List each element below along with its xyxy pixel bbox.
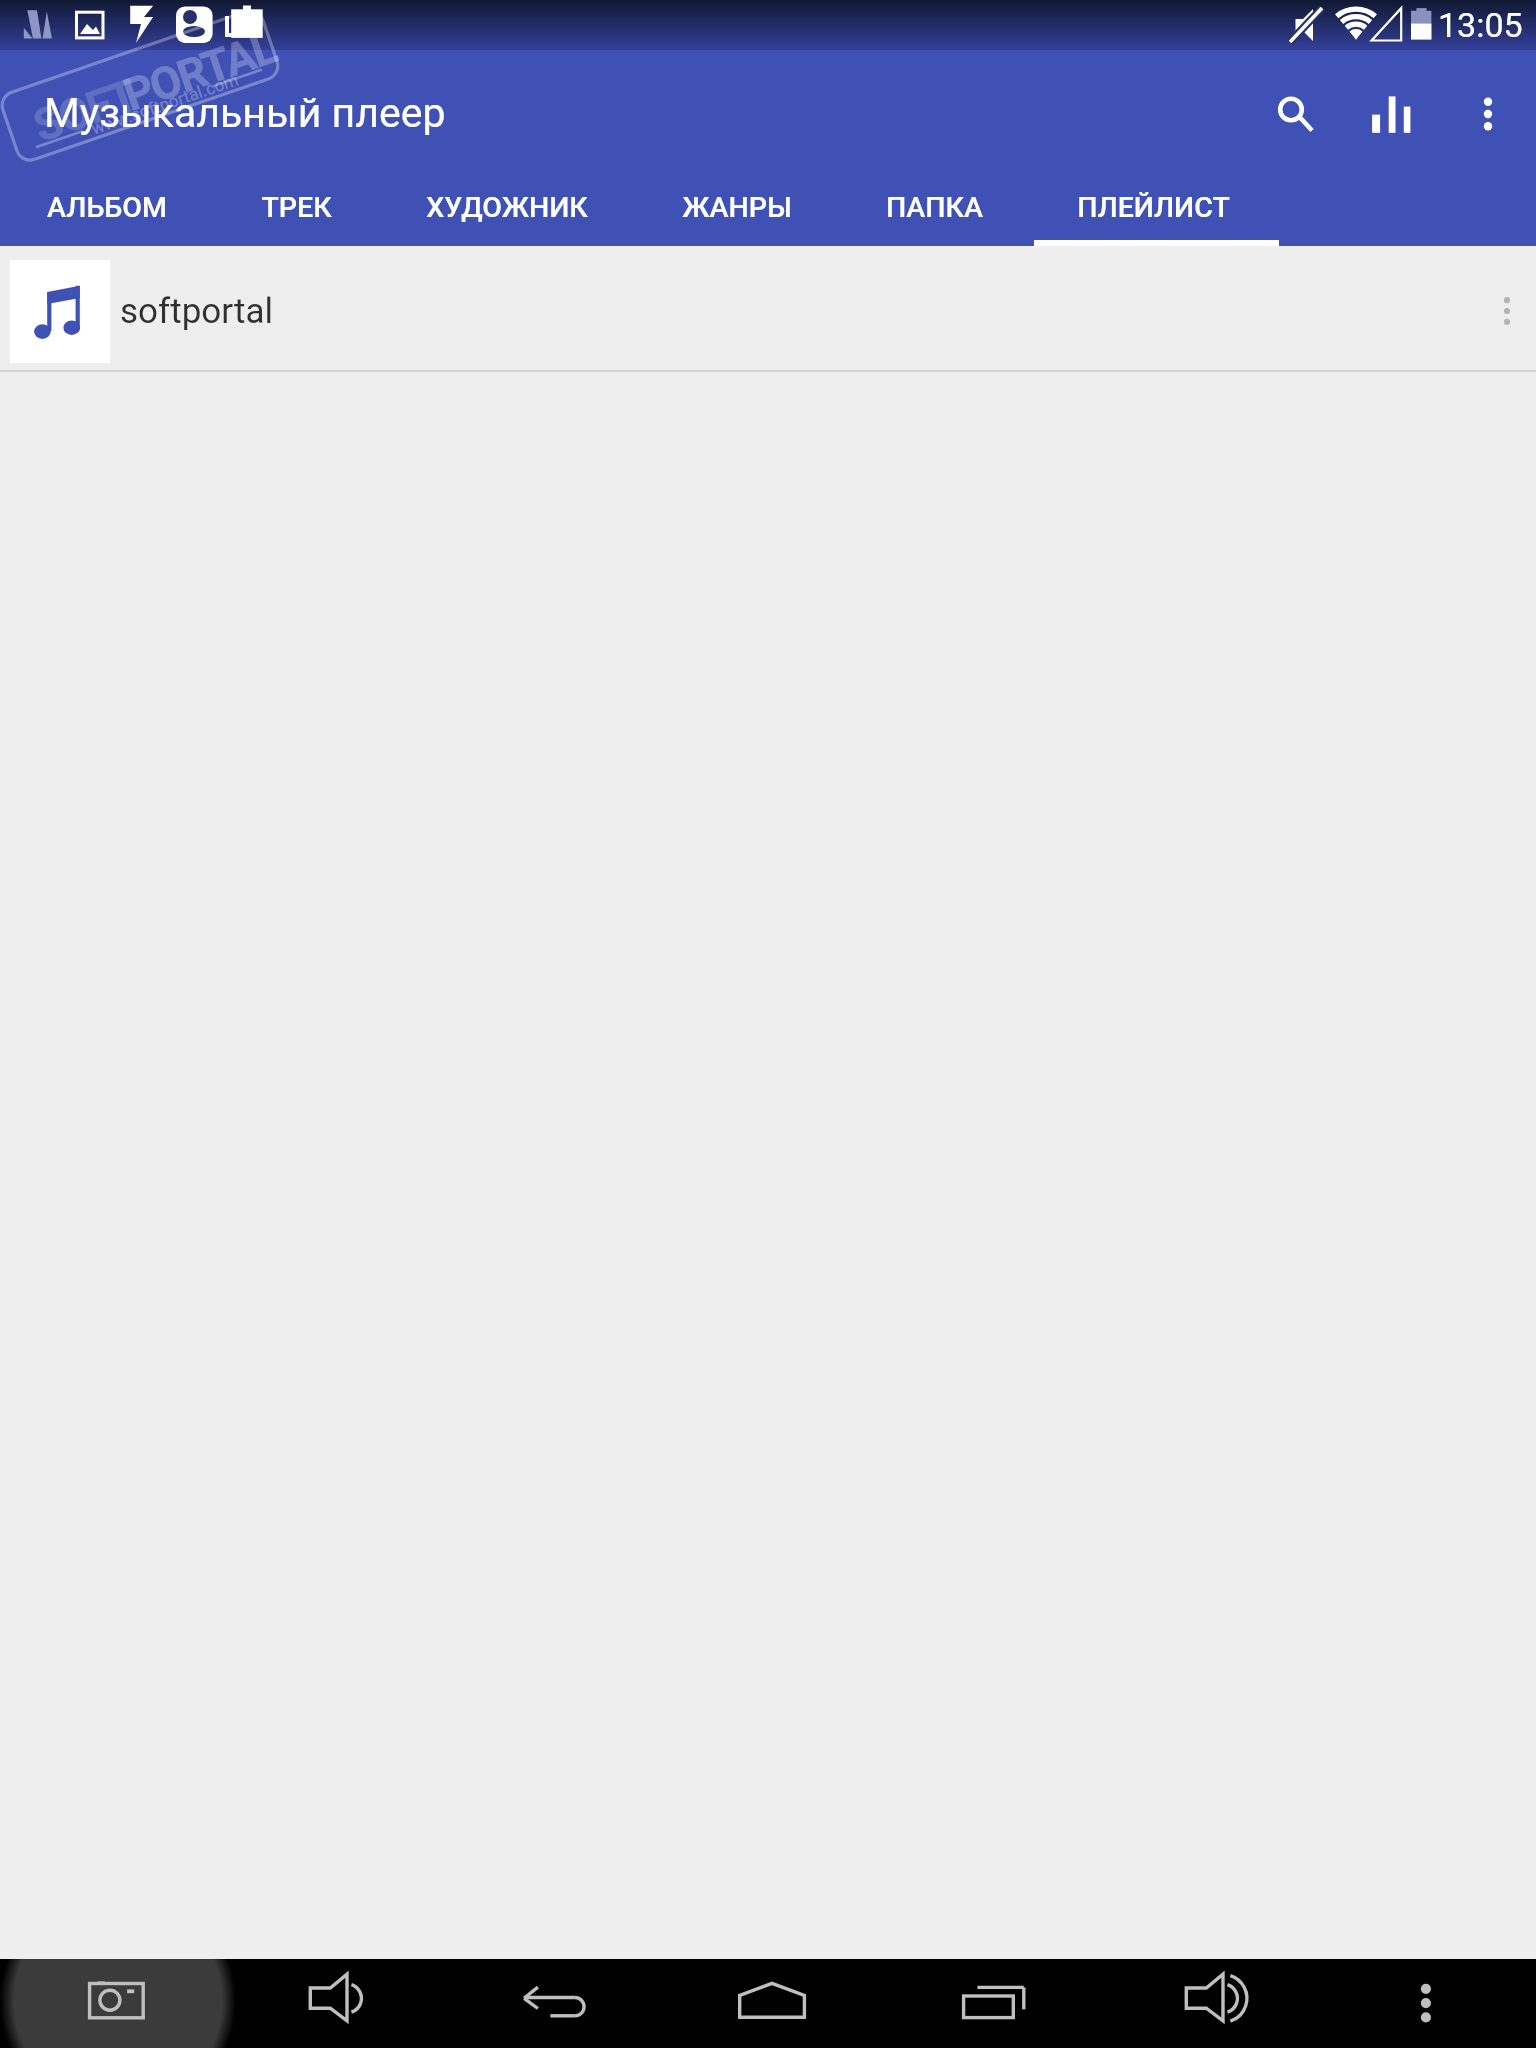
staticText: softportal xyxy=(120,291,273,332)
staticText: SOFT xyxy=(27,69,143,153)
button[interactable]: ЖАНРЫ xyxy=(635,178,839,246)
button[interactable]: Volume down xyxy=(220,1959,440,2048)
button[interactable]: Menu xyxy=(1317,1959,1536,2048)
staticText: ТРЕК xyxy=(261,191,332,224)
button[interactable]: Camera xyxy=(0,1959,220,2048)
button[interactable]: Recents xyxy=(879,1959,1098,2048)
staticText: www.softportal.com xyxy=(89,69,242,139)
staticText: PORTAL xyxy=(117,21,282,122)
button[interactable]: ПЛЕЙЛИСТ xyxy=(1030,178,1277,246)
button[interactable]: Equalizer xyxy=(1342,50,1440,178)
staticText: ЖАНРЫ xyxy=(682,191,792,224)
staticText: АЛЬБОМ xyxy=(47,191,167,224)
button[interactable]: Playlist options xyxy=(1478,246,1536,370)
button[interactable]: ХУДОЖНИК xyxy=(379,178,635,246)
staticText: ПЛЕЙЛИСТ xyxy=(1077,191,1230,224)
button[interactable]: softportal xyxy=(0,246,1536,370)
button[interactable]: Home xyxy=(660,1959,879,2048)
button[interactable]: Search xyxy=(1244,50,1342,178)
staticText: ПАПКА xyxy=(886,191,983,224)
button[interactable]: АЛЬБОМ xyxy=(0,178,214,246)
button[interactable]: Volume up xyxy=(1098,1959,1317,2048)
button[interactable]: ТРЕК xyxy=(214,178,379,246)
button[interactable]: ПАПКА xyxy=(839,178,1030,246)
button[interactable]: More options xyxy=(1440,50,1536,178)
staticText: ХУДОЖНИК xyxy=(426,191,588,224)
button[interactable]: Back xyxy=(440,1959,660,2048)
staticText: Музыкальный плеер xyxy=(44,89,446,137)
staticText: 13:05 xyxy=(1438,5,1523,45)
